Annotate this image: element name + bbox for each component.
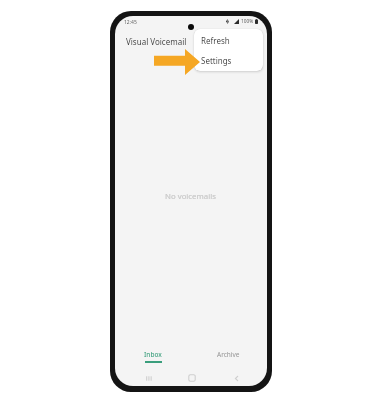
staticText: Settings <box>201 55 232 66</box>
staticText: No voicemails <box>165 191 216 202</box>
staticText: Refresh <box>201 35 230 46</box>
staticText: Archive <box>217 350 240 359</box>
button[interactable]: Recent apps <box>142 372 154 384</box>
button[interactable]: Refresh <box>194 29 263 50</box>
button[interactable]: More options <box>249 31 267 49</box>
button[interactable]: Back <box>230 372 242 384</box>
button[interactable]: Home <box>186 372 198 384</box>
button[interactable]: Archive <box>207 350 249 370</box>
staticText: 12:45 <box>124 19 137 26</box>
staticText: Visual Voicemail <box>126 36 187 47</box>
button[interactable]: Inbox <box>132 350 174 370</box>
button[interactable]: Settings <box>194 50 263 70</box>
staticText: Inbox <box>144 350 162 359</box>
staticText: 100% <box>241 18 254 25</box>
